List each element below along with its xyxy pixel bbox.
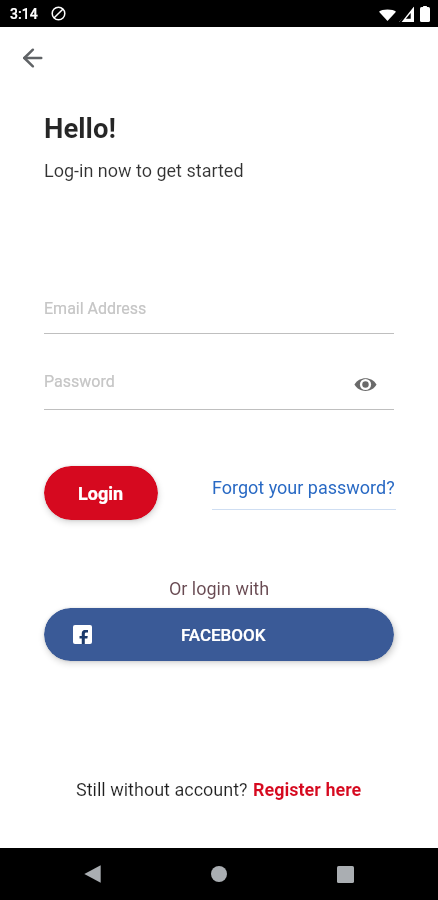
button[interactable]: Register here (253, 779, 362, 800)
staticText: Email Address (44, 299, 147, 318)
staticText: Log-in now to get started (44, 160, 244, 181)
button[interactable]: FACEBOOK (44, 608, 394, 661)
button[interactable]: Home (195, 848, 243, 900)
button[interactable]: Forgot your password? (212, 477, 396, 510)
staticText: Or login with (0, 578, 438, 599)
staticText: Password (44, 372, 115, 391)
button[interactable]: Back (8, 34, 56, 82)
staticText: 3:14 (10, 6, 38, 22)
staticText: Hello! (44, 112, 116, 144)
button[interactable]: Show password (350, 369, 380, 399)
staticText: Forgot your password? (212, 477, 395, 498)
staticText: Still without account? (76, 779, 253, 800)
button[interactable]: Back (68, 848, 116, 900)
staticText: Login (78, 483, 124, 504)
staticText: FACEBOOK (181, 625, 266, 645)
button[interactable]: Login (44, 466, 158, 520)
button[interactable]: Recent apps (321, 848, 369, 900)
